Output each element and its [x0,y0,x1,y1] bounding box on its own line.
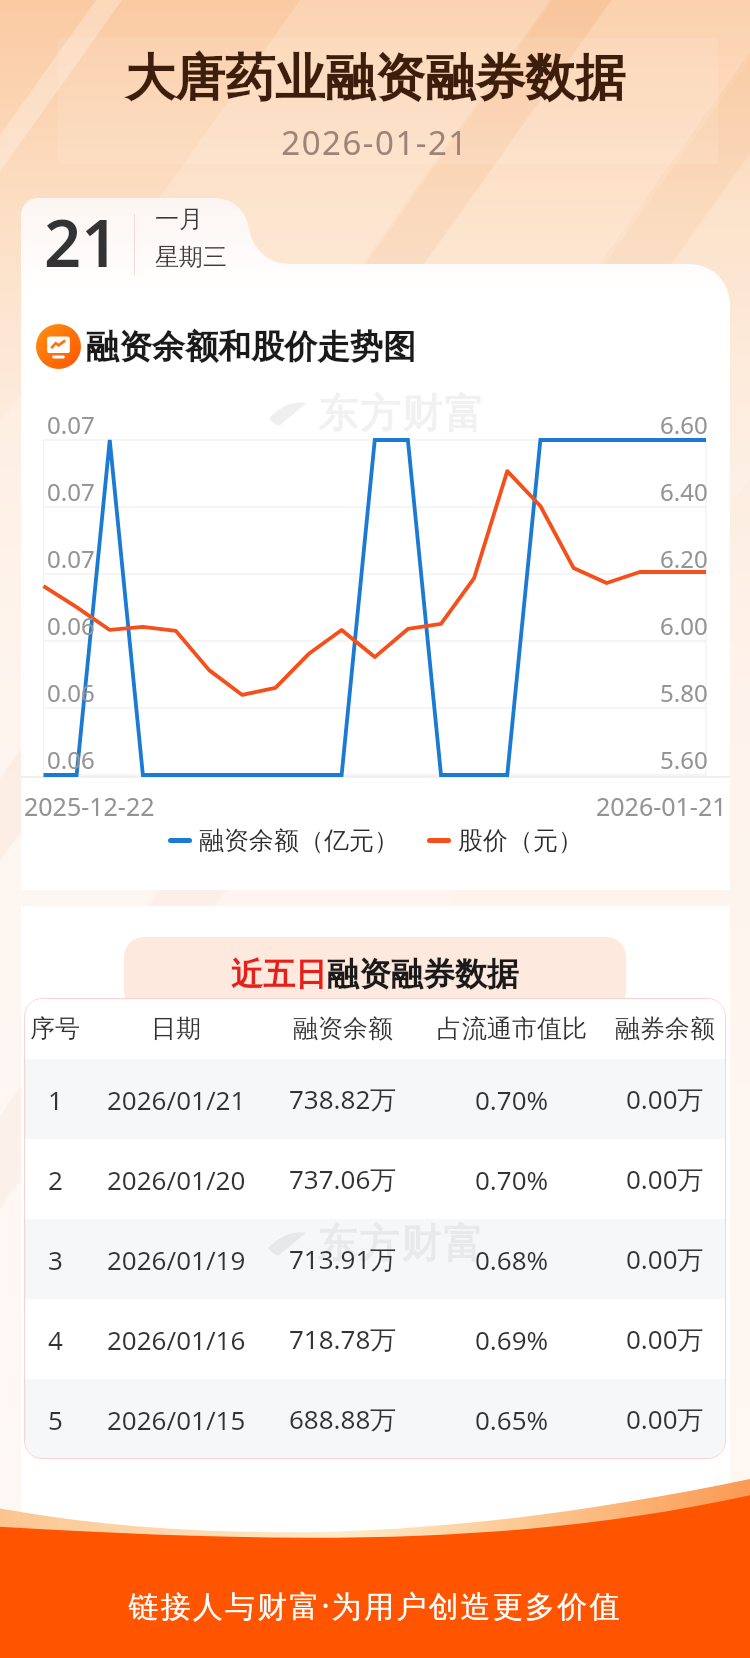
staticText: 0.06 [47,743,95,776]
staticText: 大唐药业融资融券数据 [0,47,750,110]
staticText: 0.00万 [626,1241,704,1277]
staticText: 5.60 [660,743,708,776]
staticText: 0.65% [475,1402,549,1437]
staticText: 0.07 [47,408,95,441]
staticText: 序号 [30,1013,80,1044]
staticText: 0.00万 [626,1081,704,1117]
staticText: 5 [48,1402,63,1437]
staticText: 5.80 [660,676,708,709]
staticText: 星期三 [155,242,227,272]
other: Trend chart [36,324,81,369]
staticText: 0.06 [47,676,95,709]
staticText: 2026/01/21 [107,1082,246,1117]
staticText: 融资余额（亿元） [199,825,399,856]
staticText: 713.91万 [289,1241,397,1277]
staticText: 2026/01/16 [107,1322,246,1357]
staticText: 21 [44,198,119,278]
staticText: 0.70% [475,1162,549,1197]
button[interactable]: 3 [24,1219,726,1299]
staticText: 0.00万 [626,1321,704,1357]
staticText: 737.06万 [289,1161,397,1197]
staticText: 0.00万 [626,1401,704,1437]
staticText: 4 [48,1322,63,1357]
staticText: 3 [48,1242,63,1277]
staticText: 东方财富 [317,388,485,438]
button[interactable]: 2 [24,1139,726,1219]
staticText: 链接人与财富·为用户创造更多价值 [0,1585,750,1626]
button[interactable]: 5 [24,1379,726,1459]
staticText: 融资余额和股价走势图 [86,326,416,368]
staticText: 0.69% [475,1322,549,1357]
staticText: 738.82万 [289,1081,397,1117]
staticText: 688.88万 [289,1401,397,1437]
staticText: 占流通市值比 [437,1013,587,1044]
staticText: 0.07 [47,542,95,575]
staticText: 近五日融资融券数据 [231,954,519,994]
staticText: 2026/01/15 [107,1402,246,1437]
staticText: 6.00 [660,609,708,642]
staticText: 718.78万 [289,1321,397,1357]
staticText: 0.68% [475,1242,549,1277]
staticText: 融券余额 [615,1013,715,1044]
staticText: 2026/01/20 [107,1162,246,1197]
staticText: 2025-12-22 [24,789,155,823]
staticText: 2 [48,1162,63,1197]
staticText: 1 [48,1082,63,1117]
staticText: 日期 [151,1013,201,1044]
staticText: 6.60 [660,408,708,441]
staticText: 0.07 [47,475,95,508]
staticText: 6.40 [660,475,708,508]
staticText: 0.00万 [626,1161,704,1197]
staticText: 6.20 [660,542,708,575]
staticText: 一月 [155,204,203,234]
button[interactable]: 1 [24,1059,726,1139]
button[interactable]: 4 [24,1299,726,1379]
staticText: 0.70% [475,1082,549,1117]
staticText: 2026-01-21 [0,120,750,165]
staticText: 0.06 [47,609,95,642]
staticText: 东方财富 [316,1218,484,1268]
staticText: 股价（元） [458,825,583,856]
staticText: 融资余额 [293,1013,393,1044]
staticText: 2026-01-21 [596,789,727,823]
staticText: 2026/01/19 [107,1242,246,1277]
